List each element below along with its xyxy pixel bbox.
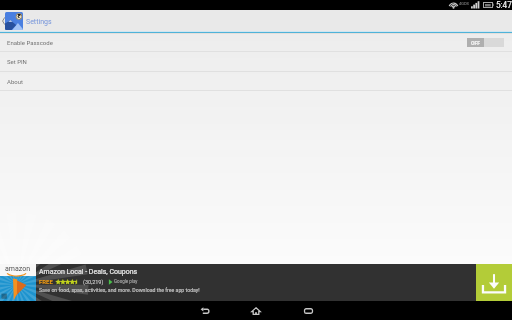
staticText: Settings [26, 18, 52, 26]
button[interactable]: Back [189, 301, 221, 320]
button[interactable]: Recent apps [292, 301, 324, 320]
staticText: (30,219) [83, 279, 104, 285]
staticText: OFF [471, 40, 480, 46]
button[interactable]: Set PIN [0, 52, 512, 71]
button[interactable] [0, 10, 56, 33]
staticText: Enable Passcode [7, 39, 53, 46]
staticText: About [7, 78, 23, 85]
button[interactable]: Enable Passcode [0, 34, 512, 51]
button[interactable]: Install [476, 264, 512, 301]
staticText: amazon [5, 265, 31, 273]
staticText: 5:47 [496, 0, 512, 10]
staticText: Google play [114, 279, 138, 284]
staticText: 4GDS [459, 1, 469, 6]
staticText: Save on food, spas, activities, and more… [39, 287, 200, 293]
staticText: Amazon Local - Deals, Coupons [39, 268, 138, 276]
button[interactable]: Enable passcode toggle, off [467, 38, 504, 47]
button[interactable]: About [0, 72, 512, 90]
staticText: FREE [39, 278, 53, 285]
button[interactable]: amazon [0, 264, 512, 301]
staticText: Set PIN [7, 58, 27, 65]
button[interactable]: Home [240, 301, 272, 320]
